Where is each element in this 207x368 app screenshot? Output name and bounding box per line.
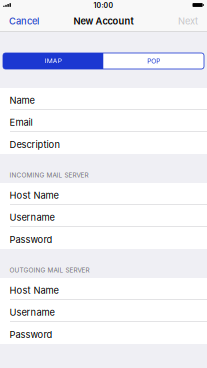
button[interactable]: POP xyxy=(103,53,204,69)
staticText: Name xyxy=(9,95,34,106)
button[interactable]: IMAP xyxy=(3,53,103,69)
staticText: OUTGOING MAIL SERVER xyxy=(9,266,89,274)
staticText: Password xyxy=(9,234,52,245)
staticText: New Account xyxy=(73,15,133,27)
button[interactable]: Email xyxy=(0,110,207,132)
button[interactable]: Next xyxy=(172,10,207,32)
staticText: Host Name xyxy=(9,285,58,296)
staticText: Next xyxy=(178,15,198,27)
button[interactable]: Description xyxy=(0,132,207,154)
staticText: Password xyxy=(9,329,52,340)
staticText: Host Name xyxy=(9,190,58,201)
staticText: INCOMING MAIL SERVER xyxy=(9,171,88,179)
button[interactable]: Password xyxy=(0,322,207,344)
staticText: Username xyxy=(9,212,54,223)
button[interactable]: Password xyxy=(0,227,207,249)
staticText: 10:00 xyxy=(93,1,113,10)
staticText: Cancel xyxy=(9,15,39,27)
button[interactable]: Host Name xyxy=(0,278,207,300)
staticText: Username xyxy=(9,307,54,318)
button[interactable]: Username xyxy=(0,205,207,227)
button[interactable]: Username xyxy=(0,300,207,322)
button[interactable]: Host Name xyxy=(0,183,207,205)
button[interactable]: Cancel xyxy=(0,10,45,32)
staticText: IMAP xyxy=(45,57,62,65)
staticText: POP xyxy=(147,57,160,65)
staticText: Description xyxy=(9,139,60,150)
staticText: Email xyxy=(9,117,32,128)
button[interactable]: Name xyxy=(0,88,207,110)
